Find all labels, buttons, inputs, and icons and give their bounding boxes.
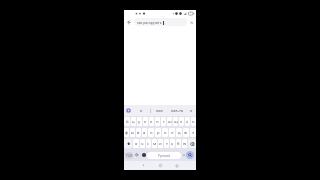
staticText: ю [183,141,187,147]
staticText: а [143,130,146,136]
button[interactable]: Backspace [188,139,196,148]
staticText: у [138,119,141,125]
staticText: ч [141,141,144,147]
button[interactable]: к [133,105,150,116]
button[interactable]: Back [137,161,149,170]
staticText: к [140,108,143,114]
button[interactable]: э [190,128,196,137]
staticText: Русский [158,154,171,158]
button[interactable]: ч [140,139,145,148]
button[interactable]: как [151,105,168,116]
button[interactable]: щ [173,117,178,126]
button[interactable]: у [137,117,142,126]
button[interactable]: ь [170,139,175,148]
staticText: к [144,119,147,125]
button[interactable]: о [162,128,168,137]
staticText: з [180,119,183,125]
staticText: как-то [171,108,184,114]
button[interactable]: х [185,117,190,126]
button[interactable]: Emoji [140,149,147,161]
staticText: д [178,130,181,136]
button[interactable]: т [164,139,169,148]
button[interactable]: Gboard menu [124,105,133,116]
button[interactable]: д [176,128,182,137]
button[interactable] [181,149,186,161]
button[interactable]: ц [131,117,136,126]
button[interactable]: а [142,128,147,137]
button[interactable]: ы [130,128,135,137]
button[interactable]: г [161,117,166,126]
staticText: п [150,130,153,136]
button[interactable]: Clear [187,17,196,27]
staticText: ц [132,119,135,125]
staticText: л [171,130,174,136]
button[interactable]: я [133,139,139,148]
staticText: й [126,119,129,125]
staticText: и [159,141,162,147]
button[interactable]: в [136,128,141,137]
staticText: э [192,130,195,136]
button[interactable]: к [186,105,196,116]
staticText: м [153,141,157,147]
button[interactable]: б [176,139,181,148]
staticText: н [156,119,159,125]
button[interactable]: Русский [147,152,181,159]
button[interactable]: Recents [171,161,183,170]
staticText: ?123 [126,154,133,158]
button[interactable]: п [148,128,154,137]
button[interactable]: с [146,139,151,148]
button[interactable]: ф [124,128,129,137]
button[interactable]: е [149,117,154,126]
staticText: ж [184,130,188,136]
staticText: в [137,130,140,136]
button[interactable]: н [155,117,160,126]
button[interactable]: как-то [168,105,186,116]
staticText: ь [171,141,174,147]
button[interactable]: к [143,117,148,126]
button[interactable]: ю [182,139,187,148]
staticText: г [163,119,165,125]
staticText: как раскрутить [137,20,162,25]
staticText: ы [131,130,135,136]
button[interactable]: ш [167,117,172,126]
button[interactable]: з [179,117,184,126]
staticText: е [150,119,153,125]
button[interactable]: и [158,139,163,148]
button[interactable]: Translate [133,149,140,161]
staticText: б [177,141,180,147]
button[interactable]: ?123 [125,152,133,159]
staticText: ъ [192,119,195,125]
button[interactable]: л [169,128,175,137]
staticText: к [190,108,193,114]
staticText: как [156,108,163,114]
button[interactable]: м [152,139,157,148]
button[interactable]: Shift [124,139,132,148]
button[interactable]: й [124,117,130,126]
button[interactable]: Home [154,161,166,170]
button[interactable]: Search [186,151,194,159]
staticText: х [186,119,189,125]
staticText: ф [125,130,129,136]
button[interactable]: Back [124,17,134,27]
button[interactable]: ж [183,128,189,137]
staticText: т [166,141,168,147]
staticText: р [157,130,160,136]
button[interactable]: р [155,128,161,137]
staticText: о [164,130,167,136]
staticText: щ [174,119,178,125]
staticText: с [147,141,150,147]
button[interactable]: как раскрутить [134,18,187,26]
staticText: я [135,141,138,147]
button[interactable]: ъ [191,117,196,126]
staticText: ш [168,119,172,125]
